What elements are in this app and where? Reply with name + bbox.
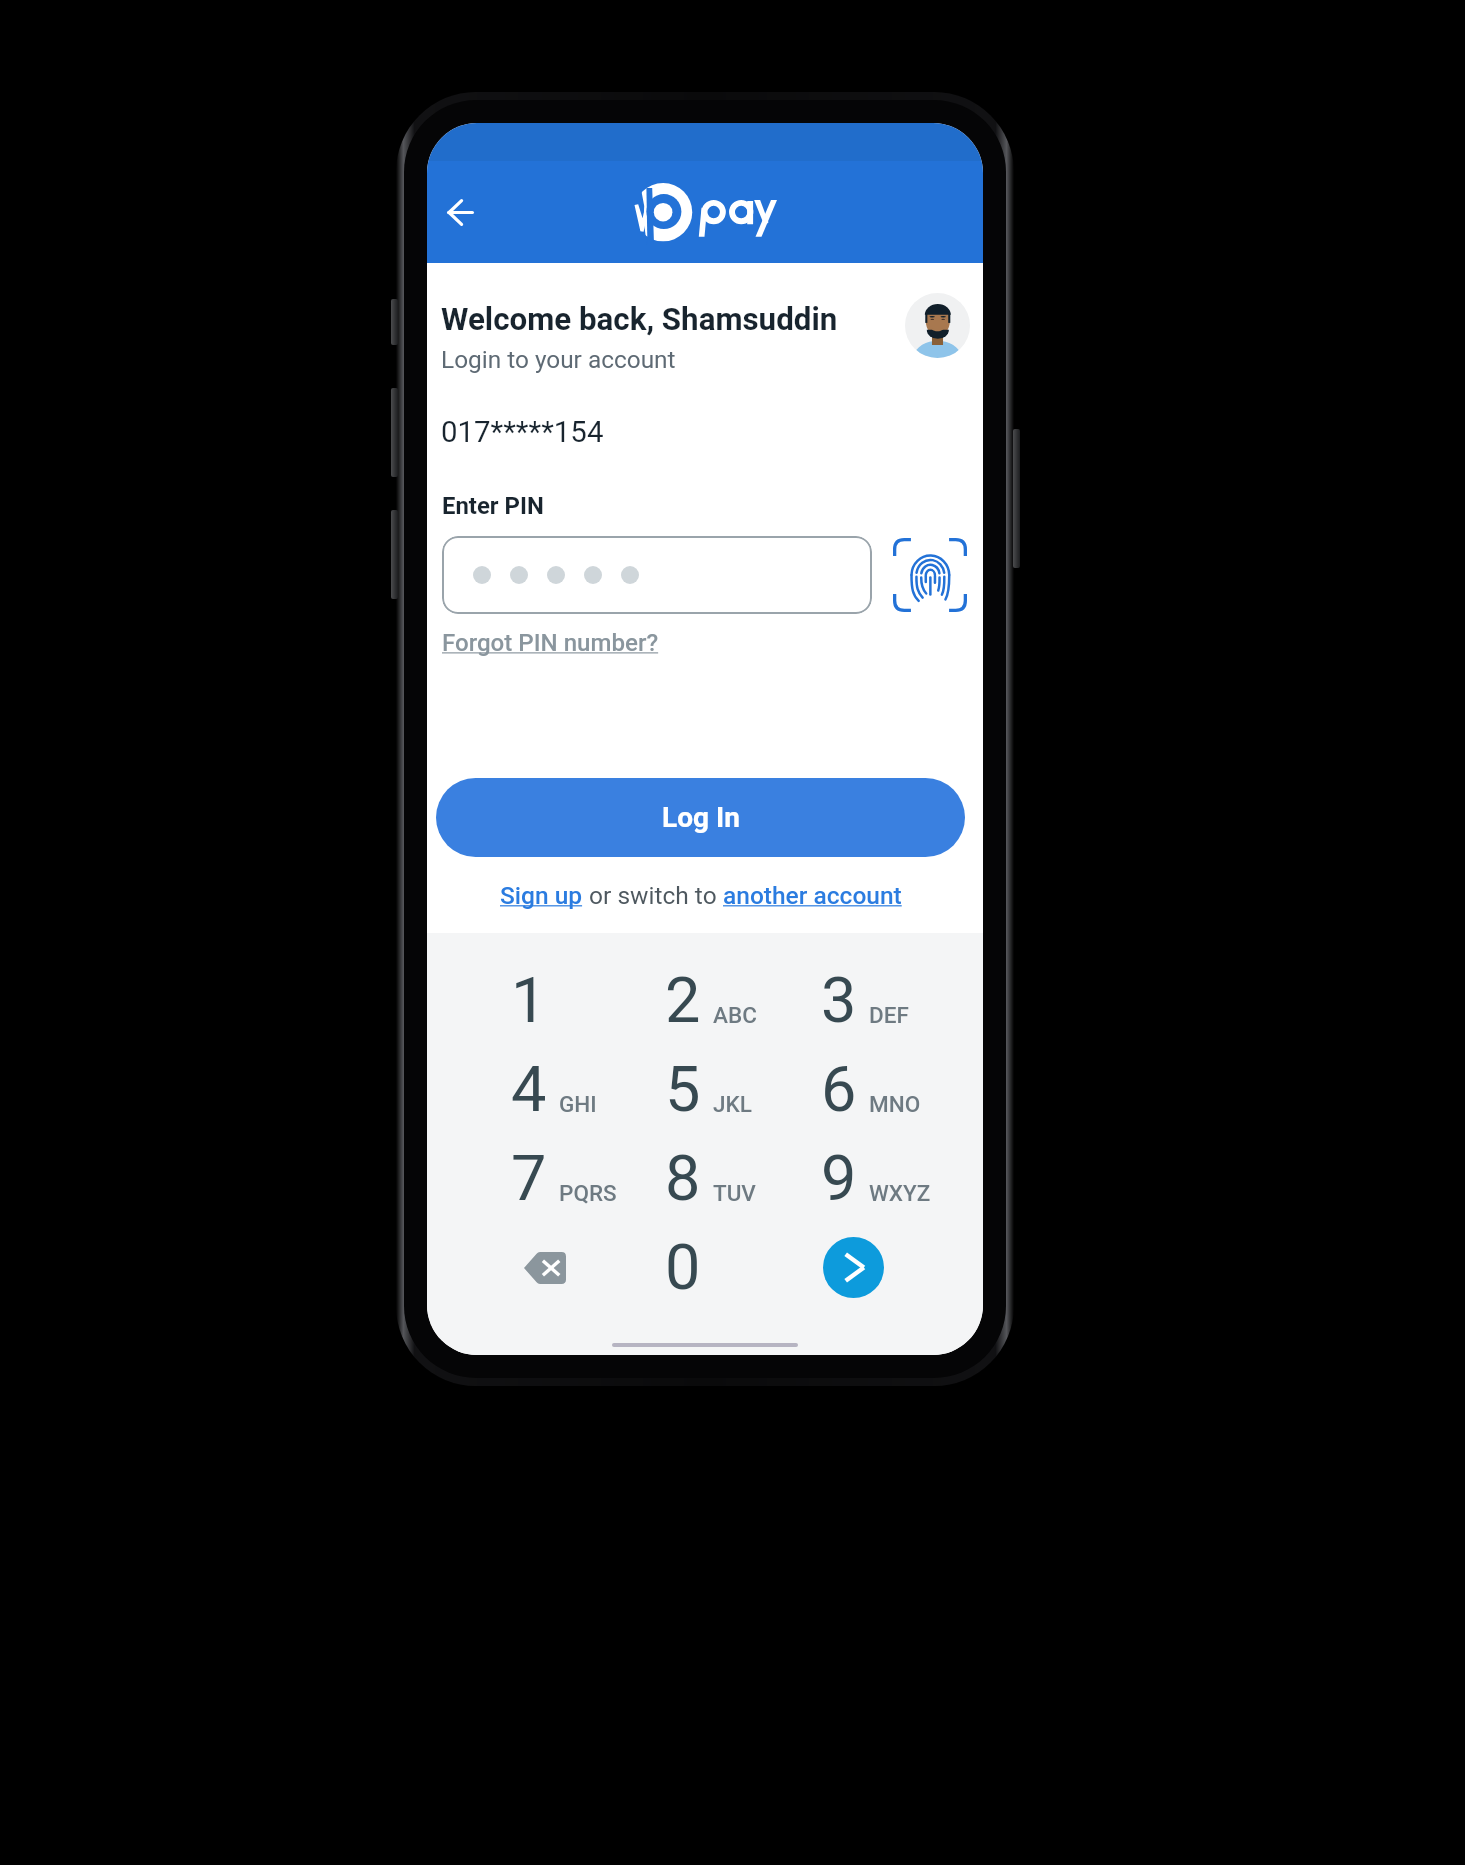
button[interactable]: 3 <box>791 956 947 1045</box>
button[interactable]: 6 <box>791 1045 947 1134</box>
button[interactable]: 4 <box>481 1045 637 1134</box>
staticText: 1 <box>511 964 547 1038</box>
staticText: TUV <box>713 1180 756 1206</box>
staticText: or switch to <box>583 881 723 910</box>
button[interactable]: 5 <box>635 1045 791 1134</box>
staticText: MNO <box>869 1091 921 1117</box>
button[interactable]: Sign up <box>500 881 583 910</box>
staticText: DEF <box>869 1002 909 1028</box>
staticText: Login to your account <box>441 345 676 374</box>
button[interactable]: Profile picture <box>905 293 970 358</box>
staticText: Forgot PIN number? <box>442 629 659 657</box>
button[interactable]: 9 <box>791 1134 947 1223</box>
staticText: 4 <box>511 1053 547 1127</box>
button[interactable]: 2 <box>635 956 791 1045</box>
staticText: 3 <box>821 964 857 1038</box>
staticText: 017*****154 <box>441 415 604 449</box>
staticText: 8 <box>665 1142 701 1216</box>
staticText: 0 <box>665 1231 701 1305</box>
staticText: WXYZ <box>869 1180 931 1206</box>
button[interactable]: Log In <box>436 778 965 857</box>
button[interactable]: 1 <box>481 956 637 1045</box>
button[interactable]: another account <box>723 881 902 910</box>
staticText: Sign up <box>500 881 583 910</box>
staticText: 7 <box>511 1142 547 1216</box>
staticText: 2 <box>665 964 701 1038</box>
button[interactable]: 0 <box>635 1223 791 1312</box>
staticText: another account <box>723 881 902 910</box>
staticText: 6 <box>821 1053 857 1127</box>
staticText: ABC <box>713 1002 757 1028</box>
button[interactable]: Forgot PIN number? <box>442 629 659 657</box>
button[interactable]: Backspace <box>467 1223 623 1312</box>
staticText: Enter PIN <box>442 492 544 520</box>
button[interactable]: 7 <box>481 1134 637 1223</box>
staticText: Welcome back, Shamsuddin <box>441 301 838 338</box>
staticText: 9 <box>821 1142 857 1216</box>
button[interactable] <box>442 536 872 614</box>
staticText: GHI <box>559 1091 597 1117</box>
staticText: 5 <box>665 1053 701 1127</box>
button[interactable]: Back <box>432 184 488 240</box>
staticText: Log In <box>662 801 740 834</box>
staticText: PQRS <box>559 1180 617 1206</box>
staticText: JKL <box>713 1091 752 1117</box>
button[interactable]: Fingerprint login <box>893 538 967 612</box>
button[interactable]: 8 <box>635 1134 791 1223</box>
button[interactable]: Continue <box>791 1223 947 1312</box>
